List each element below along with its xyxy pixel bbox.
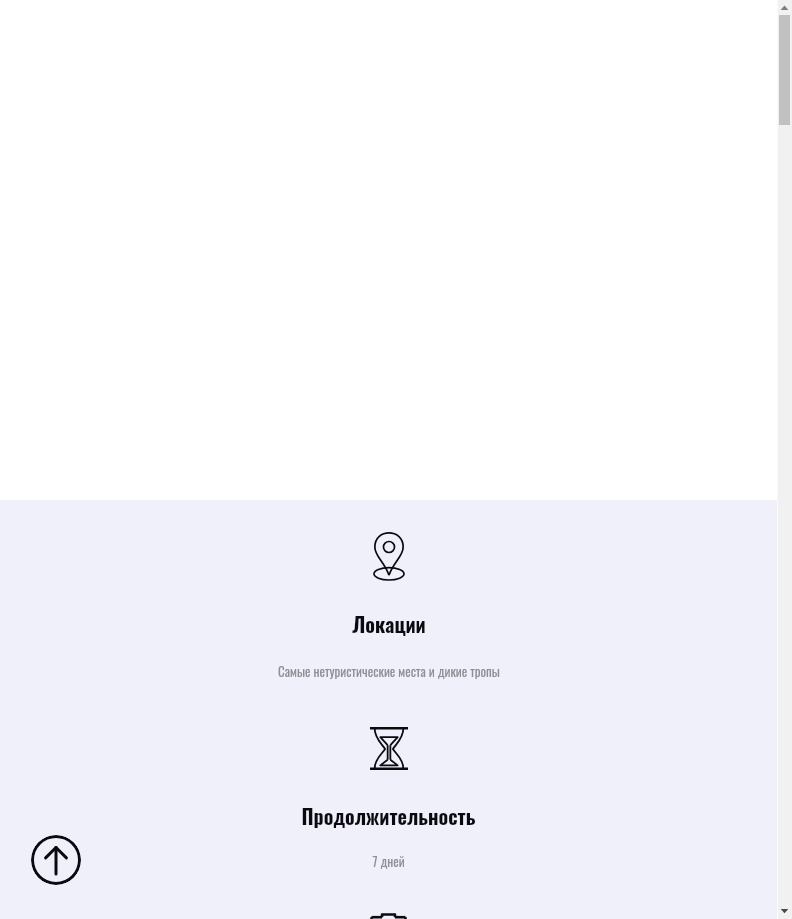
staticText: Локации xyxy=(352,609,426,639)
button[interactable]: Scroll down xyxy=(777,904,792,919)
staticText: Самые нетуристические места и дикие троп… xyxy=(278,661,500,680)
staticText: Продолжительность xyxy=(301,801,476,831)
button[interactable]: Scroll to top xyxy=(31,835,81,885)
button[interactable]: Scroll up xyxy=(777,0,792,15)
staticText: 7 дней xyxy=(372,851,405,870)
